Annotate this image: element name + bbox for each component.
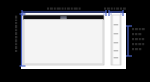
button[interactable]: Device dimension specification diagram xyxy=(0,0,150,82)
